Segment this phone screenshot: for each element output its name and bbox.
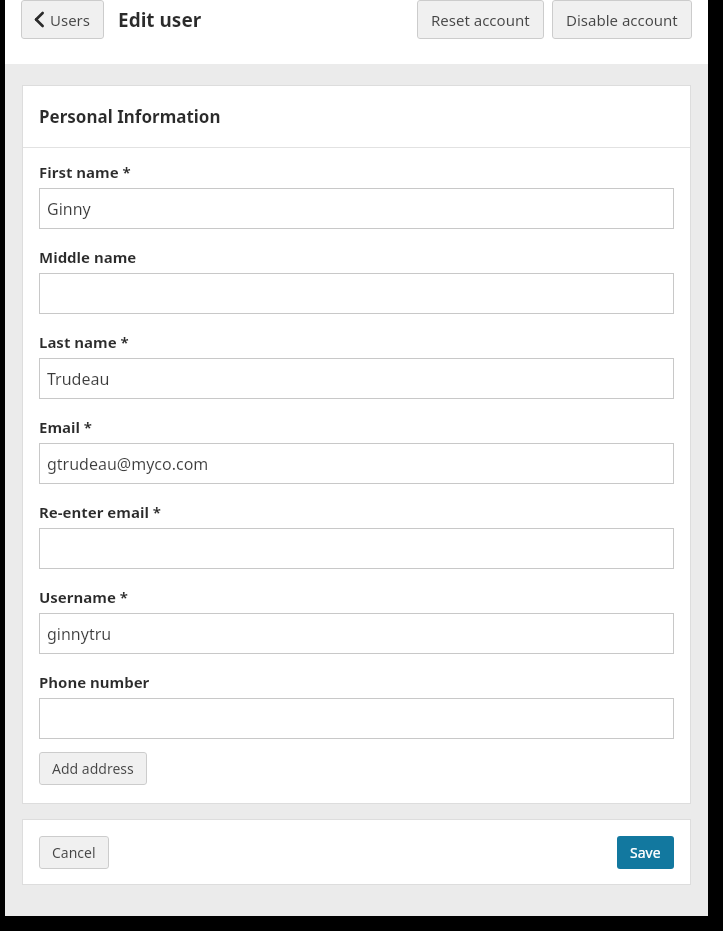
button[interactable]: Save [617, 836, 674, 869]
button[interactable]: Disable account [552, 0, 692, 39]
button[interactable]: Cancel [39, 836, 109, 869]
button[interactable]: ginnytru [39, 613, 674, 654]
staticText: Reset account [431, 10, 530, 30]
button[interactable]: Add address [39, 752, 147, 785]
staticText: Add address [52, 759, 134, 778]
staticText: Ginny [47, 198, 91, 220]
staticText: Last name * [39, 332, 129, 352]
staticText: Re-enter email * [39, 502, 161, 522]
staticText: Phone number [39, 672, 150, 692]
staticText: gtrudeau@myco.com [47, 453, 209, 475]
staticText: Personal Information [39, 105, 221, 128]
staticText: Cancel [52, 843, 96, 862]
staticText: First name * [39, 162, 131, 182]
staticText: Username * [39, 587, 128, 607]
button[interactable]: Trudeau [39, 358, 674, 399]
button[interactable] [39, 273, 674, 314]
button[interactable]: Reset account [417, 0, 544, 39]
staticText: Edit user [118, 7, 202, 33]
staticText: Middle name [39, 247, 137, 267]
button[interactable] [39, 698, 674, 739]
staticText: Save [630, 843, 661, 862]
staticText: ginnytru [47, 623, 112, 645]
staticText: Trudeau [47, 368, 110, 390]
staticText: Email * [39, 417, 92, 437]
button[interactable]: gtrudeau@myco.com [39, 443, 674, 484]
button[interactable] [39, 528, 674, 569]
staticText: Users [50, 10, 90, 30]
button[interactable]: Users [21, 0, 104, 39]
staticText: Disable account [566, 10, 678, 30]
button[interactable]: Ginny [39, 188, 674, 229]
